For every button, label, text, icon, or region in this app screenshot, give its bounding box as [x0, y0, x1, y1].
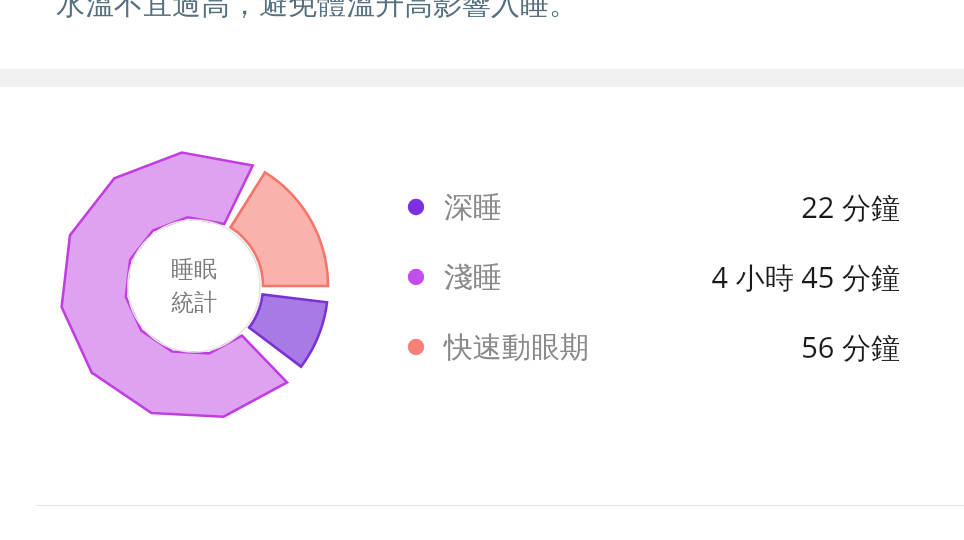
button[interactable]: 淺睡	[404, 256, 900, 298]
staticText: 淺睡	[444, 259, 502, 296]
button[interactable]: 快速動眼期	[404, 326, 900, 368]
staticText: 22 分鐘	[801, 187, 900, 227]
staticText: 睡眠	[171, 255, 217, 284]
staticText: 水溫不宜過高，避免體溫升高影響入睡。	[56, 0, 578, 23]
staticText: 統計	[171, 288, 217, 317]
staticText: 56 分鐘	[801, 327, 900, 367]
button[interactable]: 深睡	[404, 186, 900, 228]
staticText: 深睡	[444, 189, 502, 226]
button[interactable]: 睡眠	[58, 150, 330, 422]
staticText: 快速動眼期	[444, 329, 589, 366]
staticText: 4 小時 45 分鐘	[711, 257, 900, 297]
